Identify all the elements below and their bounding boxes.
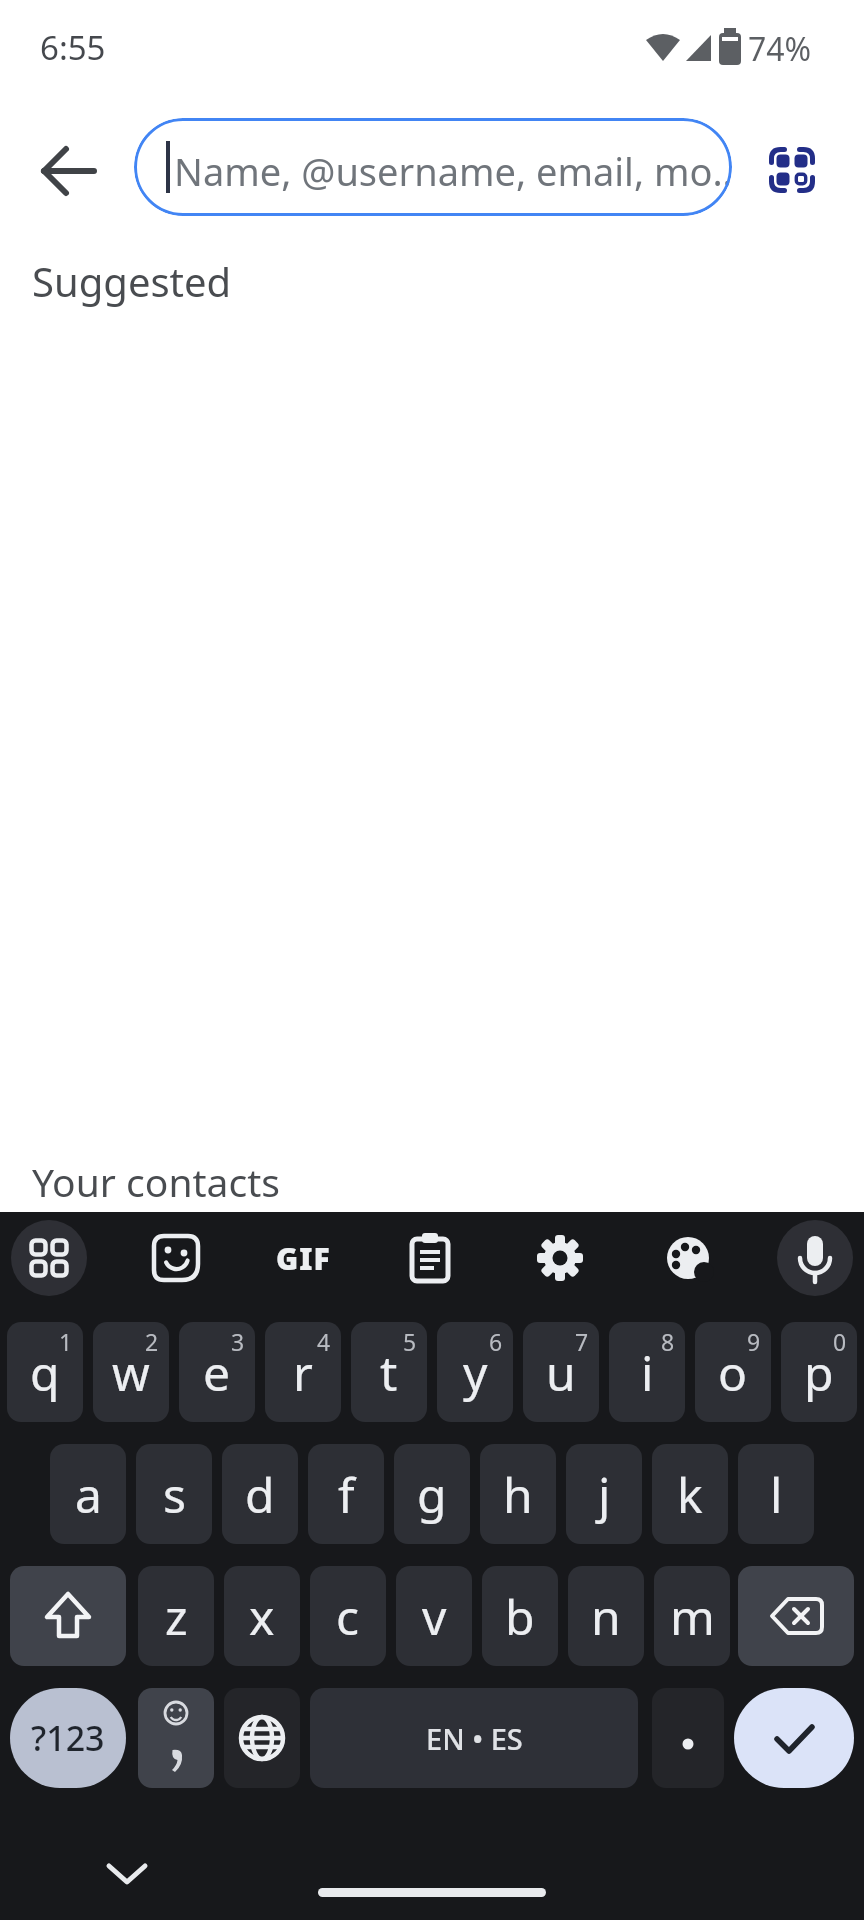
button[interactable]: v xyxy=(396,1566,472,1666)
button[interactable]: t xyxy=(351,1322,427,1422)
staticText: o xyxy=(718,1340,748,1405)
button[interactable]: d xyxy=(222,1444,298,1544)
staticText: d xyxy=(245,1462,275,1527)
button[interactable] xyxy=(138,1688,214,1788)
staticText: m xyxy=(670,1584,715,1649)
button[interactable]: l xyxy=(738,1444,814,1544)
staticText: u xyxy=(546,1340,576,1405)
button[interactable]: q xyxy=(7,1322,83,1422)
button[interactable]: r xyxy=(265,1322,341,1422)
button[interactable] xyxy=(648,1218,728,1298)
staticText: GIF xyxy=(276,1238,331,1279)
staticText: f xyxy=(338,1462,355,1527)
button[interactable] xyxy=(777,1220,853,1296)
staticText: j xyxy=(598,1462,611,1527)
button[interactable] xyxy=(34,136,104,206)
button[interactable]: y xyxy=(437,1322,513,1422)
button[interactable]: h xyxy=(480,1444,556,1544)
button[interactable]: n xyxy=(568,1566,644,1666)
button[interactable] xyxy=(652,1688,724,1788)
staticText: i xyxy=(641,1340,654,1405)
staticText: c xyxy=(336,1584,360,1649)
staticText: Your contacts xyxy=(32,1155,280,1208)
staticText: 0 xyxy=(833,1326,847,1357)
button[interactable] xyxy=(734,1688,854,1788)
staticText: 6 xyxy=(489,1326,503,1357)
button[interactable] xyxy=(136,1218,216,1298)
staticText: l xyxy=(770,1462,783,1527)
staticText: 4 xyxy=(317,1326,331,1357)
button[interactable]: GIF xyxy=(251,1218,355,1298)
button[interactable]: ?123 xyxy=(10,1688,126,1788)
staticText: t xyxy=(380,1340,398,1405)
button[interactable]: u xyxy=(523,1322,599,1422)
staticText: 5 xyxy=(403,1326,417,1357)
staticText: q xyxy=(30,1340,60,1405)
button[interactable]: c xyxy=(310,1566,386,1666)
button[interactable]: k xyxy=(652,1444,728,1544)
button[interactable] xyxy=(224,1688,300,1788)
button[interactable] xyxy=(11,1220,87,1296)
staticText: a xyxy=(75,1462,102,1527)
button[interactable]: e xyxy=(179,1322,255,1422)
staticText: v xyxy=(422,1584,447,1649)
button[interactable]: w xyxy=(93,1322,169,1422)
staticText: Suggested xyxy=(32,254,232,308)
button[interactable] xyxy=(10,1566,126,1666)
button[interactable]: Name, @username, email, mo… xyxy=(134,118,732,216)
staticText: s xyxy=(163,1462,186,1527)
button[interactable]: j xyxy=(566,1444,642,1544)
staticText: p xyxy=(804,1340,834,1405)
staticText: 8 xyxy=(661,1326,675,1357)
button[interactable]: s xyxy=(136,1444,212,1544)
button[interactable] xyxy=(738,1566,854,1666)
button[interactable]: o xyxy=(695,1322,771,1422)
staticText: 7 xyxy=(575,1326,589,1357)
staticText: 9 xyxy=(747,1326,761,1357)
button[interactable] xyxy=(520,1218,600,1298)
staticText: h xyxy=(503,1462,533,1527)
button[interactable]: z xyxy=(138,1566,214,1666)
button[interactable]: p xyxy=(781,1322,857,1422)
staticText: x xyxy=(249,1584,275,1649)
button[interactable] xyxy=(769,147,815,193)
staticText: z xyxy=(165,1584,188,1649)
staticText: k xyxy=(677,1462,703,1527)
staticText: 1 xyxy=(59,1326,73,1357)
button[interactable] xyxy=(390,1218,470,1298)
button[interactable] xyxy=(97,1842,157,1902)
staticText: Name, @username, email, mo… xyxy=(174,145,732,197)
button[interactable]: i xyxy=(609,1322,685,1422)
button[interactable]: x xyxy=(224,1566,300,1666)
staticText: ?123 xyxy=(31,1715,105,1761)
staticText: e xyxy=(203,1340,231,1405)
staticText: 2 xyxy=(145,1326,159,1357)
staticText: r xyxy=(293,1340,313,1405)
button[interactable]: m xyxy=(654,1566,730,1666)
staticText: g xyxy=(417,1462,447,1527)
staticText: w xyxy=(112,1340,150,1405)
staticText: b xyxy=(505,1584,535,1649)
staticText: EN • ES xyxy=(426,1719,523,1758)
button[interactable]: EN • ES xyxy=(310,1688,638,1788)
button[interactable]: b xyxy=(482,1566,558,1666)
staticText: 6:55 xyxy=(40,25,106,70)
staticText: n xyxy=(591,1584,621,1649)
staticText: 74% xyxy=(748,27,812,71)
button[interactable]: g xyxy=(394,1444,470,1544)
staticText: y xyxy=(463,1340,488,1405)
button[interactable]: a xyxy=(50,1444,126,1544)
button[interactable]: f xyxy=(308,1444,384,1544)
staticText: 3 xyxy=(231,1326,245,1357)
